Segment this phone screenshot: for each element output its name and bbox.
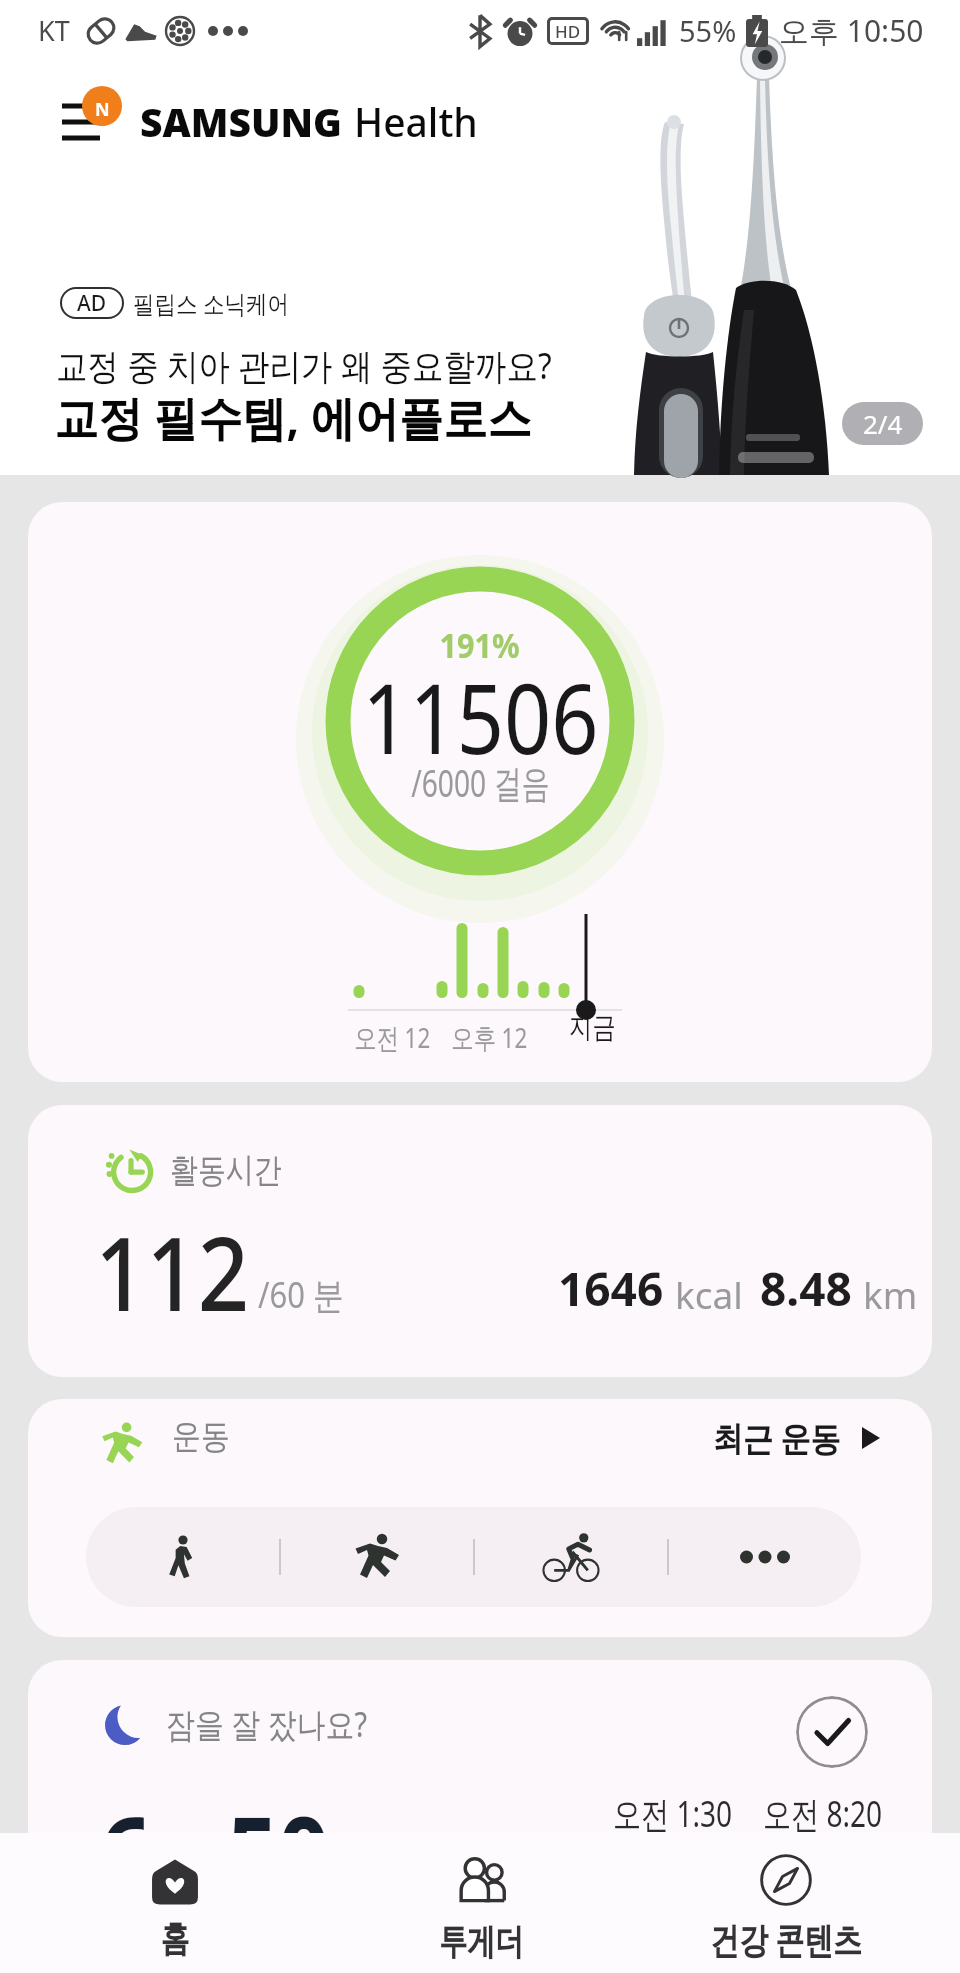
button[interactable]: 투게더 xyxy=(328,1833,633,1973)
staticText: 오전 12 xyxy=(354,1018,431,1056)
staticText: 필립스 소닉케어 xyxy=(133,286,289,320)
button[interactable]: Running xyxy=(281,1507,473,1607)
staticText: Health xyxy=(354,95,478,148)
staticText: 191% xyxy=(439,622,520,668)
button[interactable]: 잠을 잘 잤나요? xyxy=(28,1660,932,1920)
staticText: 112 xyxy=(95,1202,250,1341)
staticText: 8.48 xyxy=(760,1257,852,1320)
staticText: /60 분 xyxy=(258,1270,344,1319)
staticText: 활동시간 xyxy=(170,1149,281,1192)
button[interactable]: 191% xyxy=(28,502,932,1082)
button[interactable]: Walking xyxy=(86,1507,279,1607)
staticText: 11506 xyxy=(362,651,599,782)
button[interactable]: 운동 xyxy=(28,1399,932,1637)
button[interactable]: More exercises xyxy=(669,1507,861,1607)
staticText: N xyxy=(95,97,110,122)
button[interactable]: Cycling xyxy=(475,1507,667,1607)
staticText: 홈 xyxy=(161,1916,189,1961)
staticText: 55% xyxy=(679,11,737,50)
staticText: 2/4 xyxy=(863,406,903,441)
button[interactable]: Confirm sleep xyxy=(796,1696,868,1768)
staticText: 6 xyxy=(100,1782,152,1920)
staticText: 오후 10:50 xyxy=(779,10,924,51)
button[interactable]: 활동시간 xyxy=(28,1105,932,1377)
staticText: 오후 12 xyxy=(451,1018,528,1056)
staticText: 교정 중 치아 관리가 왜 중요할까요? xyxy=(56,341,552,390)
staticText: SAMSUNG xyxy=(140,95,342,148)
staticText: 지금 xyxy=(569,1009,615,1046)
button[interactable]: 2/4 xyxy=(842,402,923,445)
staticText: 50 xyxy=(227,1782,330,1920)
button[interactable]: 건강 콘텐츠 xyxy=(633,1833,938,1973)
button[interactable]: Menu xyxy=(58,92,118,150)
staticText: 잠을 잘 잤나요? xyxy=(166,1701,367,1747)
staticText: KT xyxy=(38,12,70,49)
staticText: 교정 필수템, 에어플로스 xyxy=(54,385,531,449)
staticText: /6000 걸음 xyxy=(411,756,550,808)
staticText: km xyxy=(863,1269,918,1319)
button[interactable]: 홈 xyxy=(22,1833,328,1973)
staticText: 건강 콘텐츠 xyxy=(710,1915,862,1964)
staticText: HD xyxy=(555,20,581,43)
staticText: 운동 xyxy=(172,1415,230,1458)
button[interactable]: 최근 운동 xyxy=(713,1415,880,1461)
staticText: 투게더 xyxy=(439,1919,523,1964)
staticText: 오전 8:20 xyxy=(763,1789,882,1838)
staticText: 최근 운동 xyxy=(713,1415,841,1461)
staticText: 오전 1:30 xyxy=(613,1789,732,1838)
staticText: 1646 xyxy=(558,1257,664,1320)
staticText: AD xyxy=(77,289,107,318)
staticText: kcal xyxy=(675,1269,743,1319)
